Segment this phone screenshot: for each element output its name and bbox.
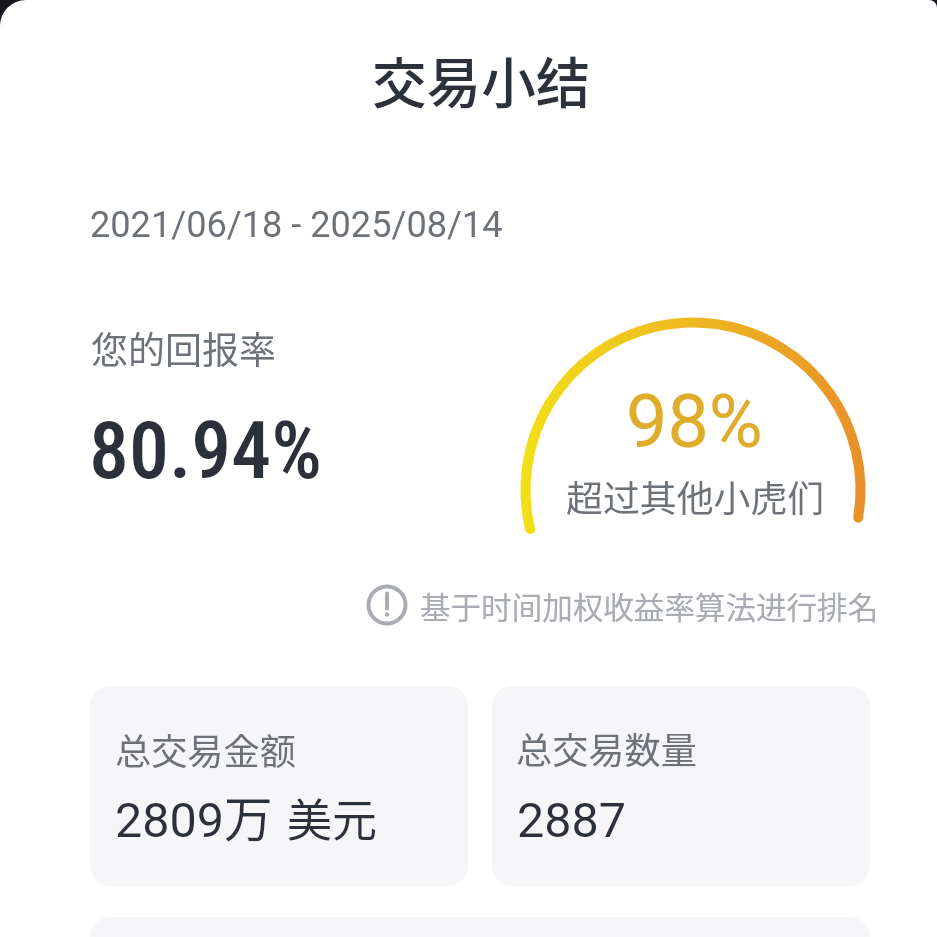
staticText: 98% (626, 379, 763, 465)
staticText: 您的回报率 (91, 321, 276, 375)
staticText: 美元 (287, 785, 378, 850)
staticText: 基于时间加权收益率算法进行排名 (420, 584, 879, 628)
staticText: 80.94% (89, 404, 323, 498)
staticText: 交易小结 (372, 40, 591, 119)
staticText: 2809 (115, 792, 225, 849)
staticText: 2887 (517, 792, 627, 849)
button[interactable]: 总交易数量 2887 (492, 686, 870, 886)
staticText: 万 (224, 781, 273, 851)
staticText: 2021/06/18 - 2025/08/14 (90, 203, 503, 245)
button[interactable]: 排名算法说明 (366, 582, 876, 628)
staticText: 总交易金额 (115, 723, 296, 775)
staticText: 总交易数量 (516, 722, 697, 774)
staticText: 超过其他小虎们 (566, 469, 825, 522)
button[interactable]: 总交易金额 2809万 美元 (90, 686, 468, 886)
